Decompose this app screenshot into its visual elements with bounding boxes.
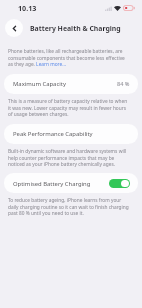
staticText: This is a measure of battery capacity re… (8, 98, 130, 118)
staticText: Maximum Capacity (13, 80, 66, 88)
staticText: Phone batteries, like all rechargeable b… (8, 48, 130, 68)
button[interactable]: Maximum Capacity (4, 74, 138, 94)
button[interactable]: Optimised Battery Charging (109, 179, 130, 188)
staticText: Optimised Battery Charging (13, 180, 91, 188)
staticText: Built-in dynamic software and hardware s… (8, 148, 130, 168)
staticText: 84 % (117, 80, 130, 88)
staticText: Battery Health & Charging (30, 24, 121, 33)
staticText: 10.13 (18, 3, 37, 13)
button[interactable]: Optimised Battery Charging (4, 173, 138, 193)
staticText: To reduce battery ageing, iPhone learns … (8, 197, 130, 217)
staticText: Peak Performance Capability (13, 130, 93, 138)
button[interactable]: Peak Performance Capability (4, 124, 138, 144)
button[interactable]: Back (5, 19, 23, 37)
